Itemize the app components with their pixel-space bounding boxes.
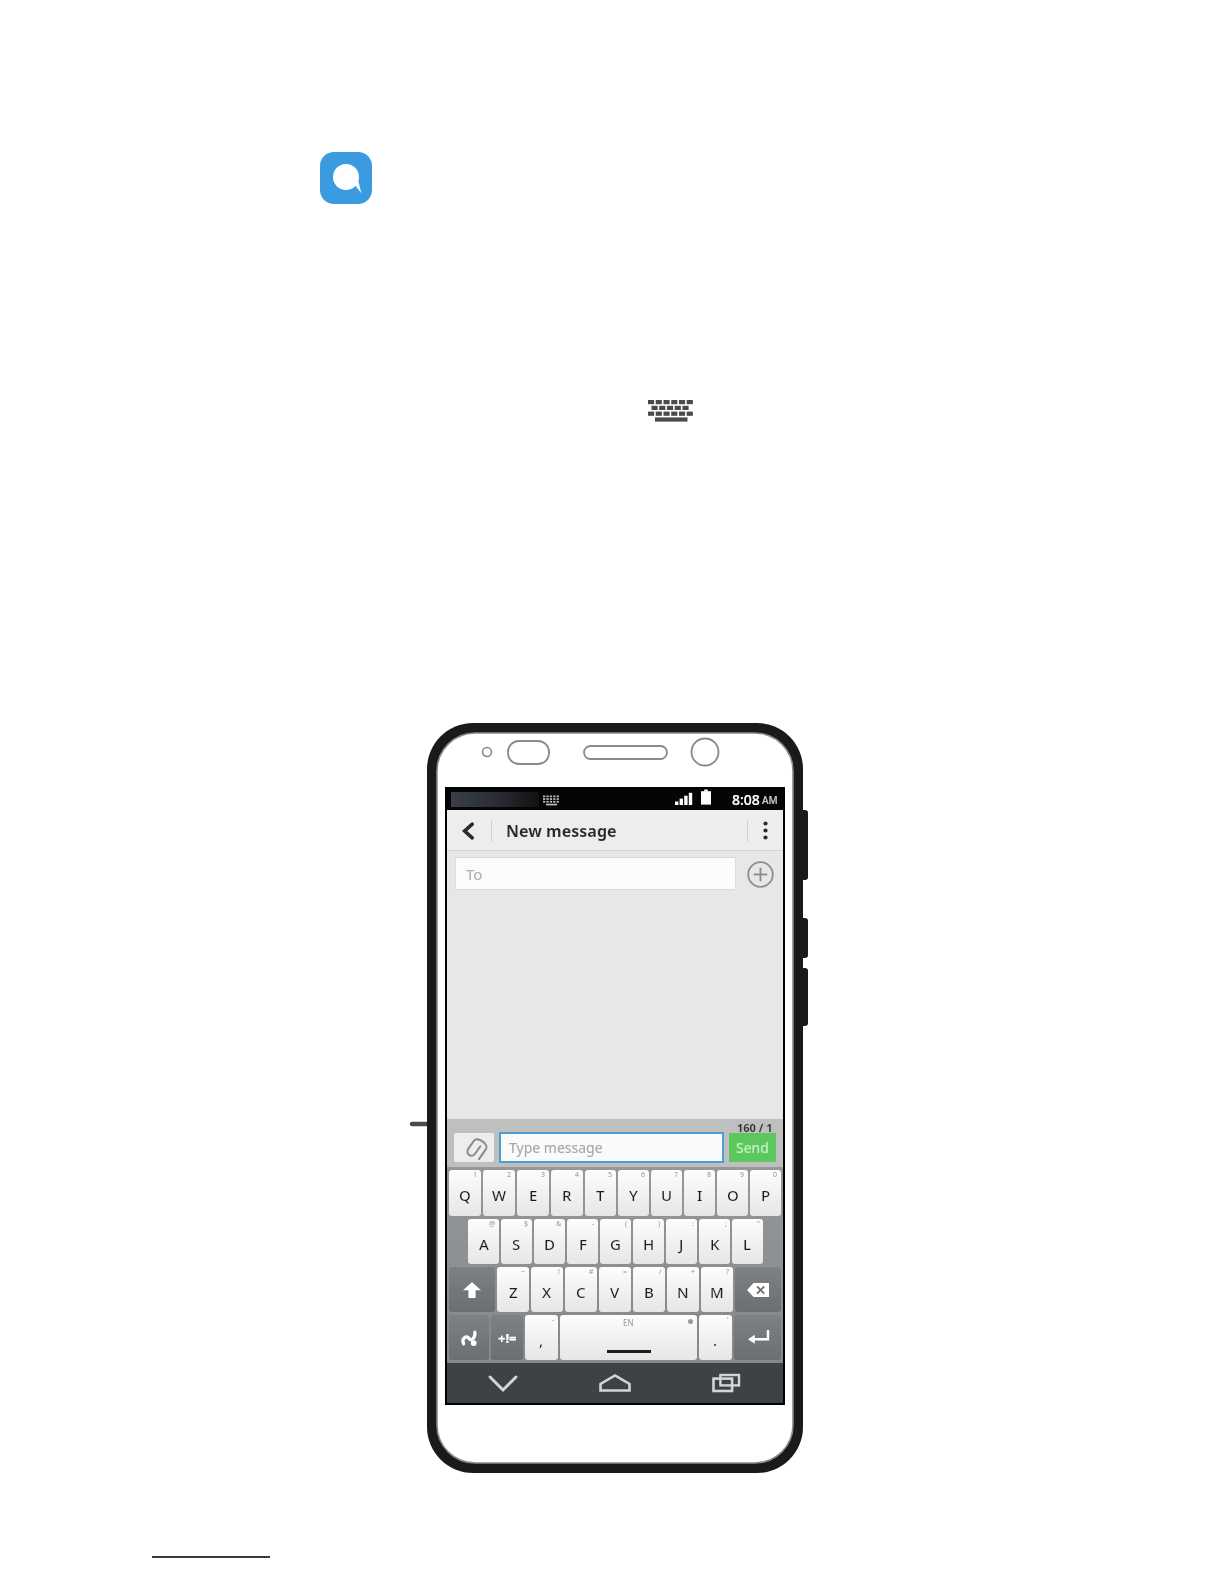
button[interactable]: - (567, 1219, 598, 1264)
button[interactable]: To (455, 857, 736, 890)
button[interactable]: Type message (500, 1133, 723, 1162)
staticText: 9 (740, 1170, 745, 1180)
button[interactable]: + (667, 1267, 699, 1312)
button[interactable]: Emoji (449, 1315, 489, 1360)
button[interactable]: - (525, 1315, 558, 1360)
staticText: J (679, 1234, 684, 1254)
button[interactable]: Recent apps (671, 1363, 783, 1403)
button[interactable]: More options (748, 810, 783, 851)
button[interactable]: & (534, 1219, 565, 1264)
staticText: = (623, 1267, 628, 1277)
staticText: Send (736, 1138, 769, 1157)
staticText: I (697, 1185, 703, 1205)
button[interactable]: Home (559, 1363, 671, 1403)
button[interactable]: 9 (717, 1170, 748, 1216)
staticText: ) (658, 1219, 661, 1229)
button[interactable]: ; (699, 1219, 730, 1264)
button[interactable]: Enter (734, 1315, 781, 1360)
button[interactable]: 0 (750, 1170, 781, 1216)
staticText: 2 (507, 1170, 512, 1180)
staticText: K (710, 1234, 720, 1254)
button[interactable]: ~ (497, 1267, 529, 1312)
staticText: V (610, 1282, 620, 1302)
button[interactable]: 4 (551, 1170, 583, 1216)
staticText: $ (524, 1219, 529, 1229)
staticText: New message (506, 820, 617, 842)
staticText: . (713, 1330, 718, 1350)
button[interactable]: 7 (651, 1170, 682, 1216)
staticText: 8:08 (732, 790, 760, 809)
staticText: ; (725, 1219, 727, 1229)
staticText: # (589, 1267, 594, 1277)
button[interactable]: ( (600, 1219, 631, 1264)
staticText: , (539, 1330, 544, 1350)
staticText: / (659, 1267, 662, 1277)
staticText: 7 (674, 1170, 679, 1180)
button[interactable]: Messages app icon (320, 152, 372, 204)
button[interactable]: = (599, 1267, 631, 1312)
staticText: P (761, 1185, 771, 1205)
button[interactable]: 2 (483, 1170, 515, 1216)
staticText: M (710, 1282, 724, 1302)
staticText: - (592, 1219, 595, 1229)
staticText: EN (623, 1317, 634, 1328)
button[interactable]: 3 (517, 1170, 549, 1216)
staticText: C (576, 1282, 586, 1302)
staticText: B (644, 1282, 654, 1302)
staticText: & (556, 1219, 562, 1229)
staticText: F (579, 1234, 587, 1254)
staticText: AM (762, 793, 778, 807)
staticText: S (512, 1234, 521, 1254)
staticText: To (466, 864, 483, 884)
staticText: 0 (773, 1170, 778, 1180)
staticText: W (492, 1185, 507, 1205)
staticText: 4 (575, 1170, 580, 1180)
button[interactable]: # (565, 1267, 597, 1312)
button[interactable]: Hide keyboard (447, 1363, 559, 1403)
staticText: ? (726, 1267, 730, 1277)
button[interactable]: $ (501, 1219, 532, 1264)
button[interactable]: Symbols (491, 1315, 523, 1360)
button[interactable]: 5 (585, 1170, 616, 1216)
staticText: +!= (498, 1329, 517, 1347)
button[interactable]: 6 (618, 1170, 649, 1216)
button[interactable]: Attach (454, 1133, 494, 1162)
staticText: Y (629, 1185, 638, 1205)
staticText: Q (459, 1185, 471, 1205)
staticText: Type message (509, 1138, 603, 1157)
button[interactable]: ? (701, 1267, 733, 1312)
staticText: A (479, 1234, 489, 1254)
button[interactable]: Send (729, 1133, 776, 1162)
button[interactable]: Add recipient (745, 859, 775, 889)
staticText: E (529, 1185, 538, 1205)
button[interactable]: ' (699, 1315, 732, 1360)
button[interactable]: 8 (684, 1170, 715, 1216)
button[interactable]: Keyboard (648, 398, 696, 428)
button[interactable]: ) (633, 1219, 664, 1264)
staticText: ! (558, 1267, 560, 1277)
button[interactable]: / (633, 1267, 665, 1312)
staticText: L (743, 1234, 752, 1254)
button[interactable]: Backspace (735, 1267, 781, 1312)
staticText: 8 (707, 1170, 712, 1180)
button[interactable]: @ (468, 1219, 499, 1264)
button[interactable]: Shift (449, 1267, 495, 1312)
staticText: G (610, 1234, 621, 1254)
button[interactable]: ! (531, 1267, 563, 1312)
staticText: X (542, 1282, 552, 1302)
staticText: H (643, 1234, 655, 1254)
staticText: D (544, 1234, 555, 1254)
button[interactable]: " (732, 1219, 763, 1264)
staticText: ( (625, 1219, 628, 1229)
button[interactable]: : (666, 1219, 697, 1264)
button[interactable]: 1 (449, 1170, 481, 1216)
staticText: : (692, 1219, 694, 1229)
staticText: 3 (541, 1170, 546, 1180)
staticText: R (562, 1185, 572, 1205)
button[interactable]: Back (447, 810, 491, 851)
staticText: O (727, 1185, 739, 1205)
staticText: N (677, 1282, 689, 1302)
staticText: @ (489, 1219, 496, 1229)
button[interactable]: Space (560, 1315, 697, 1360)
staticText: T (596, 1185, 605, 1205)
